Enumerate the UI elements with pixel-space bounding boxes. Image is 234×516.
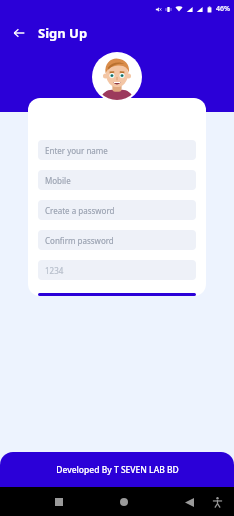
button[interactable]: Recents <box>48 491 70 513</box>
button[interactable]: Back <box>178 491 200 513</box>
button[interactable]: Home <box>113 491 135 513</box>
staticText: Confirm password <box>45 235 114 246</box>
button[interactable]: Sign Up <box>38 293 196 296</box>
staticText: 46% <box>216 4 230 14</box>
button[interactable]: Create a password <box>38 200 196 220</box>
staticText: Sign Up <box>38 24 88 42</box>
button[interactable]: Back <box>8 22 30 44</box>
staticText: Enter your name <box>45 145 108 156</box>
button[interactable]: Accessibility <box>206 491 228 513</box>
button[interactable]: Developed By T SEVEN LAB BD <box>0 452 234 487</box>
staticText: Developed By T SEVEN LAB BD <box>56 464 179 476</box>
button[interactable]: Enter your name <box>38 140 196 160</box>
button[interactable]: Mobile <box>38 170 196 190</box>
button[interactable]: 1234 <box>38 260 196 280</box>
button[interactable]: Confirm password <box>38 230 196 250</box>
staticText: 1234 <box>45 265 64 276</box>
staticText: Mobile <box>45 175 71 186</box>
staticText: Create a password <box>45 205 115 216</box>
